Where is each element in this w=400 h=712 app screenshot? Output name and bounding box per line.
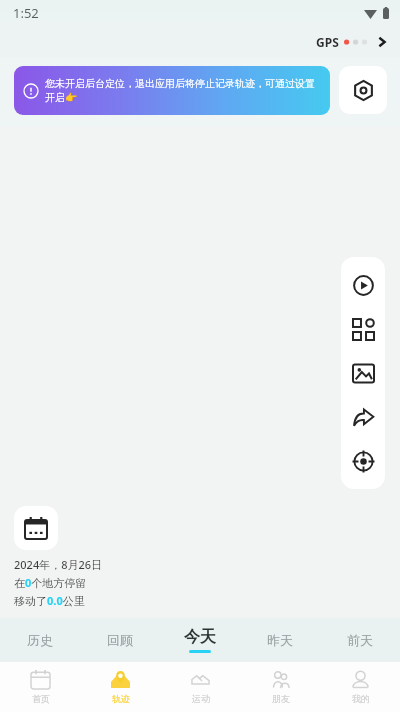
button[interactable]: 轨迹 (80, 662, 160, 712)
button[interactable]: GPS (314, 32, 390, 52)
button[interactable]: 首页 (0, 662, 80, 712)
staticText: 回顾 (107, 632, 133, 648)
staticText: 2024年，8月26日 (14, 557, 103, 572)
button[interactable]: 朋友 (240, 662, 320, 712)
staticText: 1:52 (13, 4, 39, 22)
button[interactable]: 我的 (320, 662, 400, 712)
button[interactable]: 前天 (320, 618, 400, 662)
button[interactable]: Play (341, 263, 385, 307)
staticText: 今天 (184, 627, 216, 647)
staticText: 轨迹 (112, 693, 130, 704)
button[interactable]: 运动 (160, 662, 240, 712)
button[interactable]: 今天 (160, 618, 240, 662)
button[interactable]: Locate (341, 439, 385, 483)
button[interactable]: Settings (339, 66, 387, 114)
button[interactable]: 您未开启后台定位，退出应用后将停止记录轨迹，可通过设置开启👉 (14, 66, 330, 115)
staticText: 运动 (192, 693, 210, 704)
button[interactable]: Photos (341, 351, 385, 395)
staticText: 您未开启后台定位，退出应用后将停止记录轨迹，可通过设置开启👉 (45, 77, 321, 104)
staticText: 首页 (32, 693, 50, 704)
staticText: 昨天 (267, 632, 293, 648)
button[interactable]: Share (341, 395, 385, 439)
staticText: GPS (316, 34, 339, 50)
staticText: 在0个地方停留 (14, 575, 87, 590)
button[interactable]: 2024年，8月26日 (14, 506, 103, 608)
button[interactable]: 回顾 (80, 618, 160, 662)
staticText: 朋友 (272, 693, 290, 704)
staticText: 前天 (347, 632, 373, 648)
staticText: 历史 (27, 632, 53, 648)
button[interactable]: Categories (341, 307, 385, 351)
staticText: 移动了0.0公里 (14, 593, 85, 608)
button[interactable]: 昨天 (240, 618, 320, 662)
button[interactable]: 历史 (0, 618, 80, 662)
staticText: 我的 (352, 693, 370, 704)
